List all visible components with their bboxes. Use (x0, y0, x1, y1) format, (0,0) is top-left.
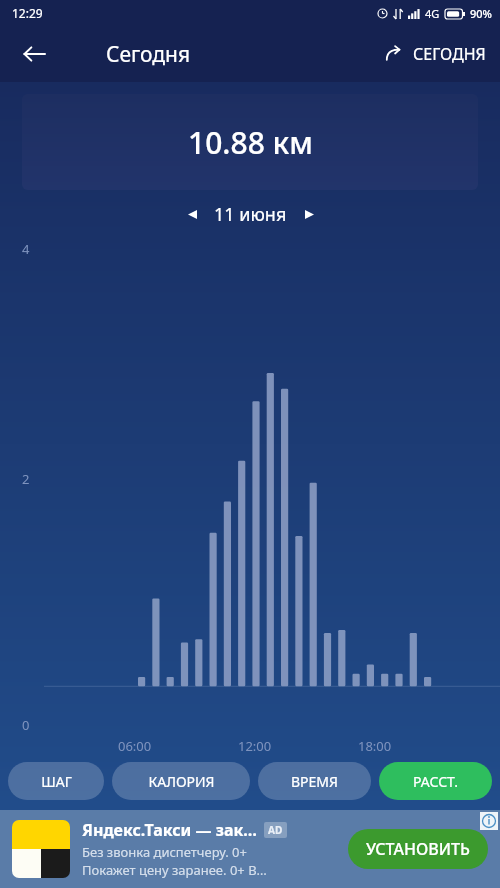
staticText: 0 (22, 716, 30, 734)
button[interactable]: ВРЕМЯ (258, 762, 371, 800)
staticText: Покажет цену заранее. 0+ В… (82, 861, 267, 879)
staticText: 4 (22, 240, 30, 258)
other: Share (385, 45, 403, 63)
button[interactable]: Previous day (178, 200, 206, 228)
staticText: 06:00 (118, 737, 152, 755)
staticText: СЕГОДНЯ (413, 43, 486, 65)
button[interactable]: ШАГ (8, 762, 104, 800)
staticText: Яндекс.Такси — зак… (82, 819, 258, 841)
button[interactable]: Back (14, 34, 54, 74)
staticText: 11 июня (214, 202, 287, 227)
staticText: РАССТ. (413, 772, 458, 791)
staticText: 2 (22, 470, 30, 488)
staticText: 4G (425, 6, 440, 21)
staticText: 12:00 (238, 737, 272, 755)
staticText: КАЛОРИЯ (148, 772, 215, 791)
staticText: Без звонка диспетчеру. 0+ (82, 843, 247, 861)
button[interactable]: Next day (295, 200, 323, 228)
button[interactable]: КАЛОРИЯ (112, 762, 250, 800)
button[interactable]: Ad info (480, 812, 498, 830)
staticText: ВРЕМЯ (291, 772, 338, 791)
staticText: Сегодня (106, 40, 191, 69)
staticText: УСТАНОВИТЬ (366, 838, 470, 860)
button[interactable]: РАССТ. (379, 762, 492, 800)
staticText: 18:00 (358, 737, 392, 755)
staticText: 10.88 км (188, 122, 313, 163)
staticText: AD (268, 823, 283, 837)
staticText: 90% (470, 6, 492, 21)
button[interactable]: УСТАНОВИТЬ (348, 829, 488, 869)
staticText: ШАГ (41, 772, 72, 791)
staticText: 12:29 (12, 5, 43, 21)
button[interactable]: 10.88 км (22, 94, 478, 190)
button[interactable]: Share (385, 43, 486, 65)
